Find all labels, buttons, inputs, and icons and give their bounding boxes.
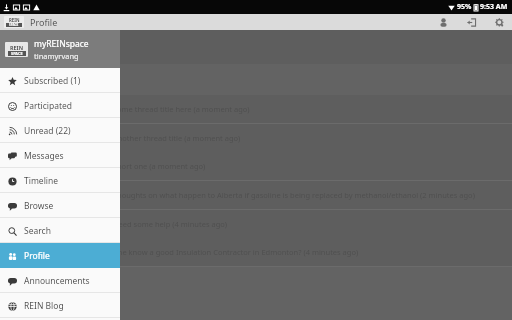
button[interactable]: Participated <box>0 93 120 118</box>
button[interactable]: Log out <box>464 15 478 29</box>
button[interactable]: Re: Thoughts on what happen to Alberta i… <box>0 181 512 209</box>
button[interactable]: Anyone know a good Insulation Contractor… <box>0 238 512 266</box>
staticText: Unread (22) <box>24 125 71 137</box>
staticText: Re: Need some help (4 minutes ago) <box>100 219 228 229</box>
staticText: myREINspace <box>34 38 89 50</box>
staticText: Anyone know a good Insulation Contractor… <box>100 247 359 257</box>
staticText: Messages <box>24 150 64 162</box>
button[interactable]: Search <box>0 218 120 243</box>
button[interactable]: Profile <box>436 15 450 29</box>
staticText: Browse <box>24 200 54 212</box>
button[interactable]: Browse <box>0 193 120 218</box>
staticText: REIN <box>10 44 24 51</box>
button[interactable]: Subscribed (1) <box>0 68 120 93</box>
staticText: Participated <box>24 100 73 112</box>
button[interactable]: REIN Blog <box>0 293 120 318</box>
button[interactable]: REIN <box>0 30 120 68</box>
button[interactable]: Re: Short one (a moment ago) <box>0 152 512 180</box>
staticText: Search <box>24 225 51 237</box>
button[interactable]: Re: Some thread title here (a moment ago… <box>0 95 512 123</box>
staticText: Re: Short one (a moment ago) <box>100 161 206 171</box>
staticText: tinamyrvang <box>34 51 79 61</box>
button[interactable]: Settings <box>492 15 506 29</box>
button[interactable]: Re: Need some help (4 minutes ago) <box>0 210 512 238</box>
staticText: Re: Another thread title (a moment ago) <box>100 133 241 143</box>
button[interactable]: Re: Another thread title (a moment ago) <box>0 124 512 152</box>
staticText: SPACE <box>11 51 23 56</box>
staticText: 9:53 AM <box>480 2 508 12</box>
button[interactable]: Timeline <box>0 168 120 193</box>
staticText: Profile <box>30 16 58 28</box>
staticText: REIN Blog <box>24 300 64 312</box>
staticText: Announcements <box>24 275 90 287</box>
button[interactable]: Profile <box>0 243 120 268</box>
button[interactable]: Announcements <box>0 268 120 293</box>
staticText: 95% <box>457 2 472 12</box>
staticText: Re: Some thread title here (a moment ago… <box>100 104 250 114</box>
staticText: Subscribed (1) <box>24 75 81 87</box>
staticText: REIN <box>9 17 20 23</box>
button[interactable]: Unread (22) <box>0 118 120 143</box>
staticText: Profile <box>24 250 50 262</box>
button[interactable]: Messages <box>0 143 120 168</box>
staticText: SPACE <box>9 23 19 27</box>
staticText: Timeline <box>24 175 59 187</box>
staticText: Re: Thoughts on what happen to Alberta i… <box>100 190 475 200</box>
